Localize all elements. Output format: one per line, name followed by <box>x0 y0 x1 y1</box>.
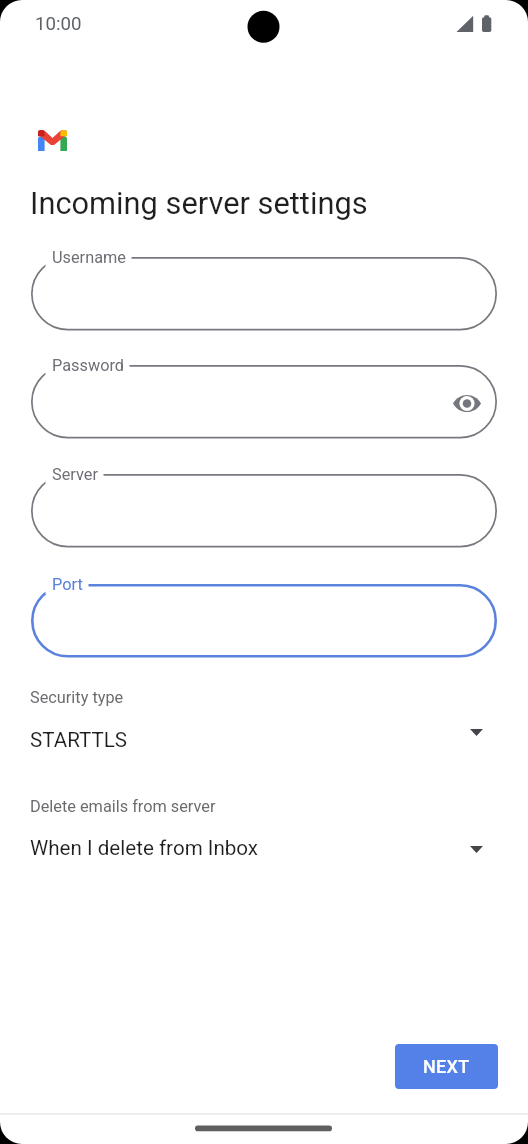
button[interactable]: NEXT <box>395 1044 498 1089</box>
staticText: NEXT <box>423 1056 470 1077</box>
button[interactable]: Delete emails from server <box>0 787 528 859</box>
button[interactable]: Username <box>31 243 497 345</box>
button[interactable]: Show password <box>442 378 492 428</box>
button[interactable]: Server <box>31 460 497 562</box>
button[interactable]: Port <box>31 570 497 672</box>
staticText: STARTTLS <box>30 728 128 752</box>
staticText: Incoming server settings <box>30 185 368 221</box>
staticText: Delete emails from server <box>30 797 216 816</box>
button[interactable]: Security type <box>0 678 528 750</box>
staticText: 10:00 <box>35 13 82 35</box>
staticText: Password <box>52 356 124 375</box>
staticText: Username <box>52 248 126 267</box>
staticText: Server <box>52 465 98 484</box>
button[interactable]: Password <box>31 351 497 453</box>
staticText: Security type <box>30 688 124 707</box>
staticText: When I delete from Inbox <box>30 836 259 860</box>
staticText: Port <box>52 575 83 594</box>
